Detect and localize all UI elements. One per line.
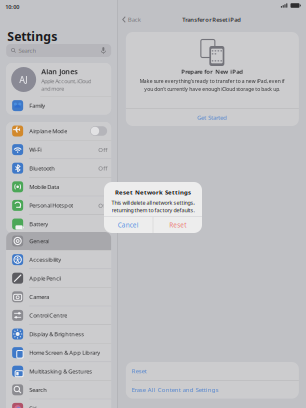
button[interactable]: Family [6, 97, 111, 115]
button[interactable]: Erase All Content and Settings [126, 381, 299, 399]
staticText: Siri [29, 404, 36, 408]
button[interactable]: Back [118, 14, 145, 25]
staticText: Camera [29, 293, 49, 301]
button[interactable]: Apple Pencil [6, 269, 111, 287]
staticText: Personal Hotspot [29, 201, 73, 209]
staticText: and more [41, 85, 64, 92]
staticText: Search [29, 386, 47, 394]
staticText: AJ [19, 73, 28, 85]
button[interactable]: Reset [153, 217, 202, 233]
staticText: Cancel [118, 221, 139, 229]
button[interactable]: Battery [6, 215, 111, 233]
staticText: Display & Brightness [29, 330, 84, 338]
staticText: Reset Network Settings [115, 188, 191, 196]
staticText: Multitasking & Gestures [29, 367, 92, 375]
button[interactable]: Accessibility [6, 251, 111, 269]
button[interactable]: Camera [6, 288, 111, 306]
staticText: 10:00 [5, 3, 19, 11]
staticText: Prepare for New iPad [181, 67, 243, 75]
staticText: This will delete all network settings, [111, 199, 194, 206]
staticText: Accessibility [29, 256, 61, 263]
staticText: Erase All Content and Settings [132, 385, 219, 394]
staticText: Control Centre [29, 311, 67, 319]
button[interactable]: Home Screen & App Library [6, 344, 111, 362]
staticText: Home Screen & App Library [29, 349, 100, 356]
button[interactable]: Display & Brightness [6, 325, 111, 343]
staticText: Back [128, 15, 141, 24]
staticText: Bluetooth [29, 164, 55, 172]
staticText: Settings [7, 28, 57, 45]
staticText: Reset [132, 367, 147, 375]
staticText: Off [98, 145, 107, 154]
staticText: General [29, 237, 49, 245]
staticText: Apple Account, iCloud [41, 77, 91, 85]
button[interactable]: Reset [126, 362, 299, 380]
staticText: Off [98, 201, 107, 209]
staticText: Make sure everything's ready to transfer… [140, 78, 285, 84]
button[interactable]: Wi-Fi [6, 141, 111, 159]
button[interactable]: AJ [6, 63, 111, 96]
staticText: Airplane Mode [29, 127, 67, 135]
button[interactable]: Siri [6, 399, 111, 408]
button[interactable]: Control Centre [6, 306, 111, 324]
button[interactable]: Personal Hotspot [6, 196, 111, 214]
staticText: Alan Jones [41, 67, 78, 76]
staticText: returning them to factory defaults. [111, 206, 194, 214]
button[interactable]: Airplane Mode [6, 122, 111, 140]
button[interactable]: General [6, 232, 111, 250]
staticText: Apple Pencil [29, 274, 61, 282]
staticText: you don't currently have enough iCloud s… [144, 86, 280, 92]
button[interactable]: Mobile Data [6, 178, 111, 196]
staticText: Family [29, 102, 45, 109]
button[interactable]: Get Started [126, 109, 299, 126]
button[interactable]: Cancel [104, 217, 153, 233]
staticText: Transfer or Reset iPad [182, 16, 241, 23]
button[interactable]: Search [6, 381, 111, 399]
staticText: Reset [169, 221, 186, 229]
button[interactable]: Bluetooth [6, 159, 111, 177]
button[interactable]: Multitasking & Gestures [6, 362, 111, 380]
staticText: Off [98, 164, 107, 172]
staticText: Battery [29, 220, 48, 228]
staticText: Wi-Fi [29, 146, 41, 153]
staticText: Get Started [197, 113, 227, 122]
staticText: Search [18, 46, 36, 54]
staticText: Mobile Data [29, 183, 59, 191]
